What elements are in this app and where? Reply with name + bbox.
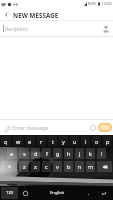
staticText: o xyxy=(95,138,99,145)
button[interactable]: Emoji keyboard xyxy=(19,186,31,200)
button[interactable]: s xyxy=(19,148,29,159)
staticText: z xyxy=(23,163,26,170)
staticText: k xyxy=(89,150,92,157)
button[interactable] xyxy=(97,161,112,172)
button[interactable]: Space xyxy=(31,186,83,200)
button[interactable]: Emoji xyxy=(87,122,98,133)
button[interactable]: Send message xyxy=(98,123,112,132)
staticText: Recipient xyxy=(5,25,28,32)
button[interactable]: g xyxy=(53,148,62,159)
staticText: 13:00 xyxy=(101,1,112,7)
staticText: d xyxy=(34,150,38,157)
staticText: x xyxy=(34,163,37,170)
staticText: n xyxy=(78,163,82,170)
button[interactable]: x xyxy=(31,161,40,172)
staticText: 123 xyxy=(6,190,14,196)
button[interactable]: u xyxy=(70,136,79,146)
staticText: w xyxy=(16,138,21,145)
staticText: NEW MESSAGE xyxy=(13,11,59,19)
button[interactable]: Attach file xyxy=(0,122,12,134)
button[interactable]: e xyxy=(25,136,35,146)
button[interactable]: Enter xyxy=(94,186,113,200)
staticText: 80% xyxy=(88,1,97,7)
staticText: t xyxy=(52,138,54,145)
staticText: y xyxy=(62,138,65,145)
staticText: English xyxy=(50,190,65,196)
button[interactable]: Suggestions xyxy=(0,173,113,186)
staticText: i xyxy=(85,138,87,145)
staticText: . xyxy=(88,190,90,197)
button[interactable]: d xyxy=(31,148,40,159)
button[interactable]: b xyxy=(64,161,73,172)
button[interactable]: m xyxy=(86,161,95,172)
button[interactable]: t xyxy=(48,136,57,146)
staticText: s xyxy=(23,150,26,157)
staticText: m xyxy=(88,163,94,170)
button[interactable]: v xyxy=(53,161,62,172)
staticText: l xyxy=(101,150,103,157)
button[interactable]: j xyxy=(75,148,84,159)
button[interactable]: f xyxy=(42,148,51,159)
staticText: Enter message xyxy=(12,124,49,131)
button[interactable]: p xyxy=(103,136,112,146)
button[interactable]: y xyxy=(59,136,68,146)
button[interactable]: 123 xyxy=(1,187,18,199)
staticText: c xyxy=(45,163,48,170)
button[interactable]: a xyxy=(7,148,17,159)
staticText: a xyxy=(10,150,14,157)
button[interactable] xyxy=(1,161,17,172)
button[interactable]: n xyxy=(75,161,84,172)
button[interactable]: w xyxy=(13,136,23,146)
staticText: f xyxy=(46,150,48,157)
staticText: e xyxy=(28,138,32,145)
button[interactable]: o xyxy=(92,136,101,146)
staticText: j xyxy=(79,150,81,157)
staticText: p xyxy=(106,138,110,145)
button[interactable]: Navigate up xyxy=(0,8,13,21)
button[interactable]: q xyxy=(1,136,11,146)
staticText: h xyxy=(67,150,71,157)
button[interactable]: l xyxy=(97,148,106,159)
staticText: q xyxy=(4,138,8,145)
staticText: r xyxy=(40,138,43,145)
button[interactable]: c xyxy=(42,161,51,172)
button[interactable]: r xyxy=(37,136,46,146)
staticText: b xyxy=(67,163,71,170)
button[interactable]: z xyxy=(19,161,29,172)
button[interactable]: Period xyxy=(83,186,94,200)
button[interactable]: k xyxy=(86,148,95,159)
button[interactable]: h xyxy=(64,148,73,159)
staticText: u xyxy=(73,138,77,145)
button[interactable]: Add recipient from contacts xyxy=(99,22,112,35)
button[interactable]: i xyxy=(81,136,90,146)
staticText: v xyxy=(56,163,59,170)
staticText: g xyxy=(56,150,60,157)
